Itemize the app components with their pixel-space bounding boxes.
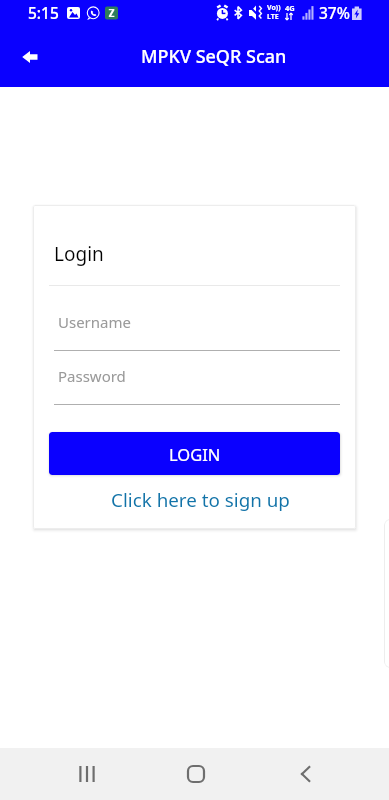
staticText: LTE [267,12,279,22]
staticText: Password [58,366,126,386]
staticText: 4G [285,3,295,13]
staticText: Login [54,241,104,267]
staticText: 37% [319,2,350,23]
staticText: 5:15 [28,2,59,23]
button[interactable]: Back [14,41,46,73]
staticText: Click here to sign up [111,487,290,513]
staticText: MPKV SeQR Scan [141,44,287,69]
button[interactable]: Username [54,304,340,351]
button[interactable]: Click here to sign up [33,483,356,517]
staticText: Username [58,312,131,332]
button[interactable]: Back [275,748,335,800]
button[interactable]: Password [54,358,340,405]
staticText: Vo)) [267,3,281,13]
button[interactable]: Home [166,748,226,800]
staticText: LOGIN [169,443,221,465]
button[interactable]: LOGIN [49,432,340,475]
button[interactable]: Recent apps [57,748,117,800]
